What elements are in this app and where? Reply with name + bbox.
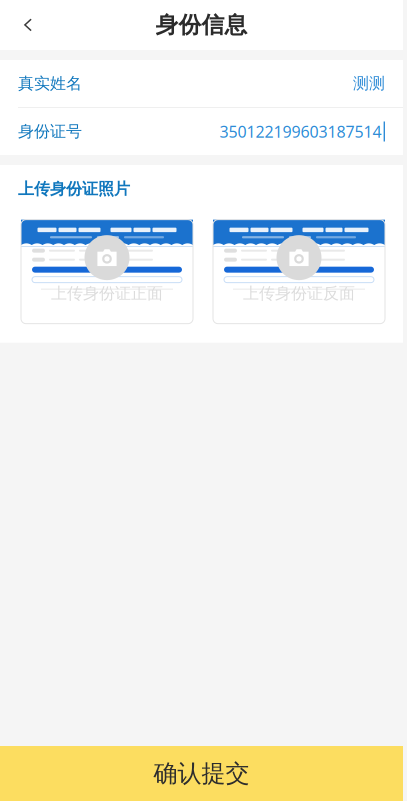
button[interactable]: Back [0, 0, 56, 50]
staticText: 测测 [353, 74, 385, 93]
button[interactable]: 上传身份证正面 [21, 220, 193, 324]
staticText: 身份证号 [18, 122, 82, 141]
button[interactable]: 上传身份证反面 [213, 220, 385, 324]
staticText: 350122199603187514 [220, 121, 382, 142]
staticText: 确认提交 [153, 759, 249, 788]
staticText: 真实姓名 [18, 74, 82, 93]
button[interactable]: 确认提交 [0, 746, 403, 801]
staticText: 上传身份证照片 [18, 179, 130, 199]
staticText: 上传身份证反面 [243, 284, 355, 303]
staticText: 身份信息 [155, 11, 247, 39]
staticText: 上传身份证正面 [51, 284, 163, 303]
